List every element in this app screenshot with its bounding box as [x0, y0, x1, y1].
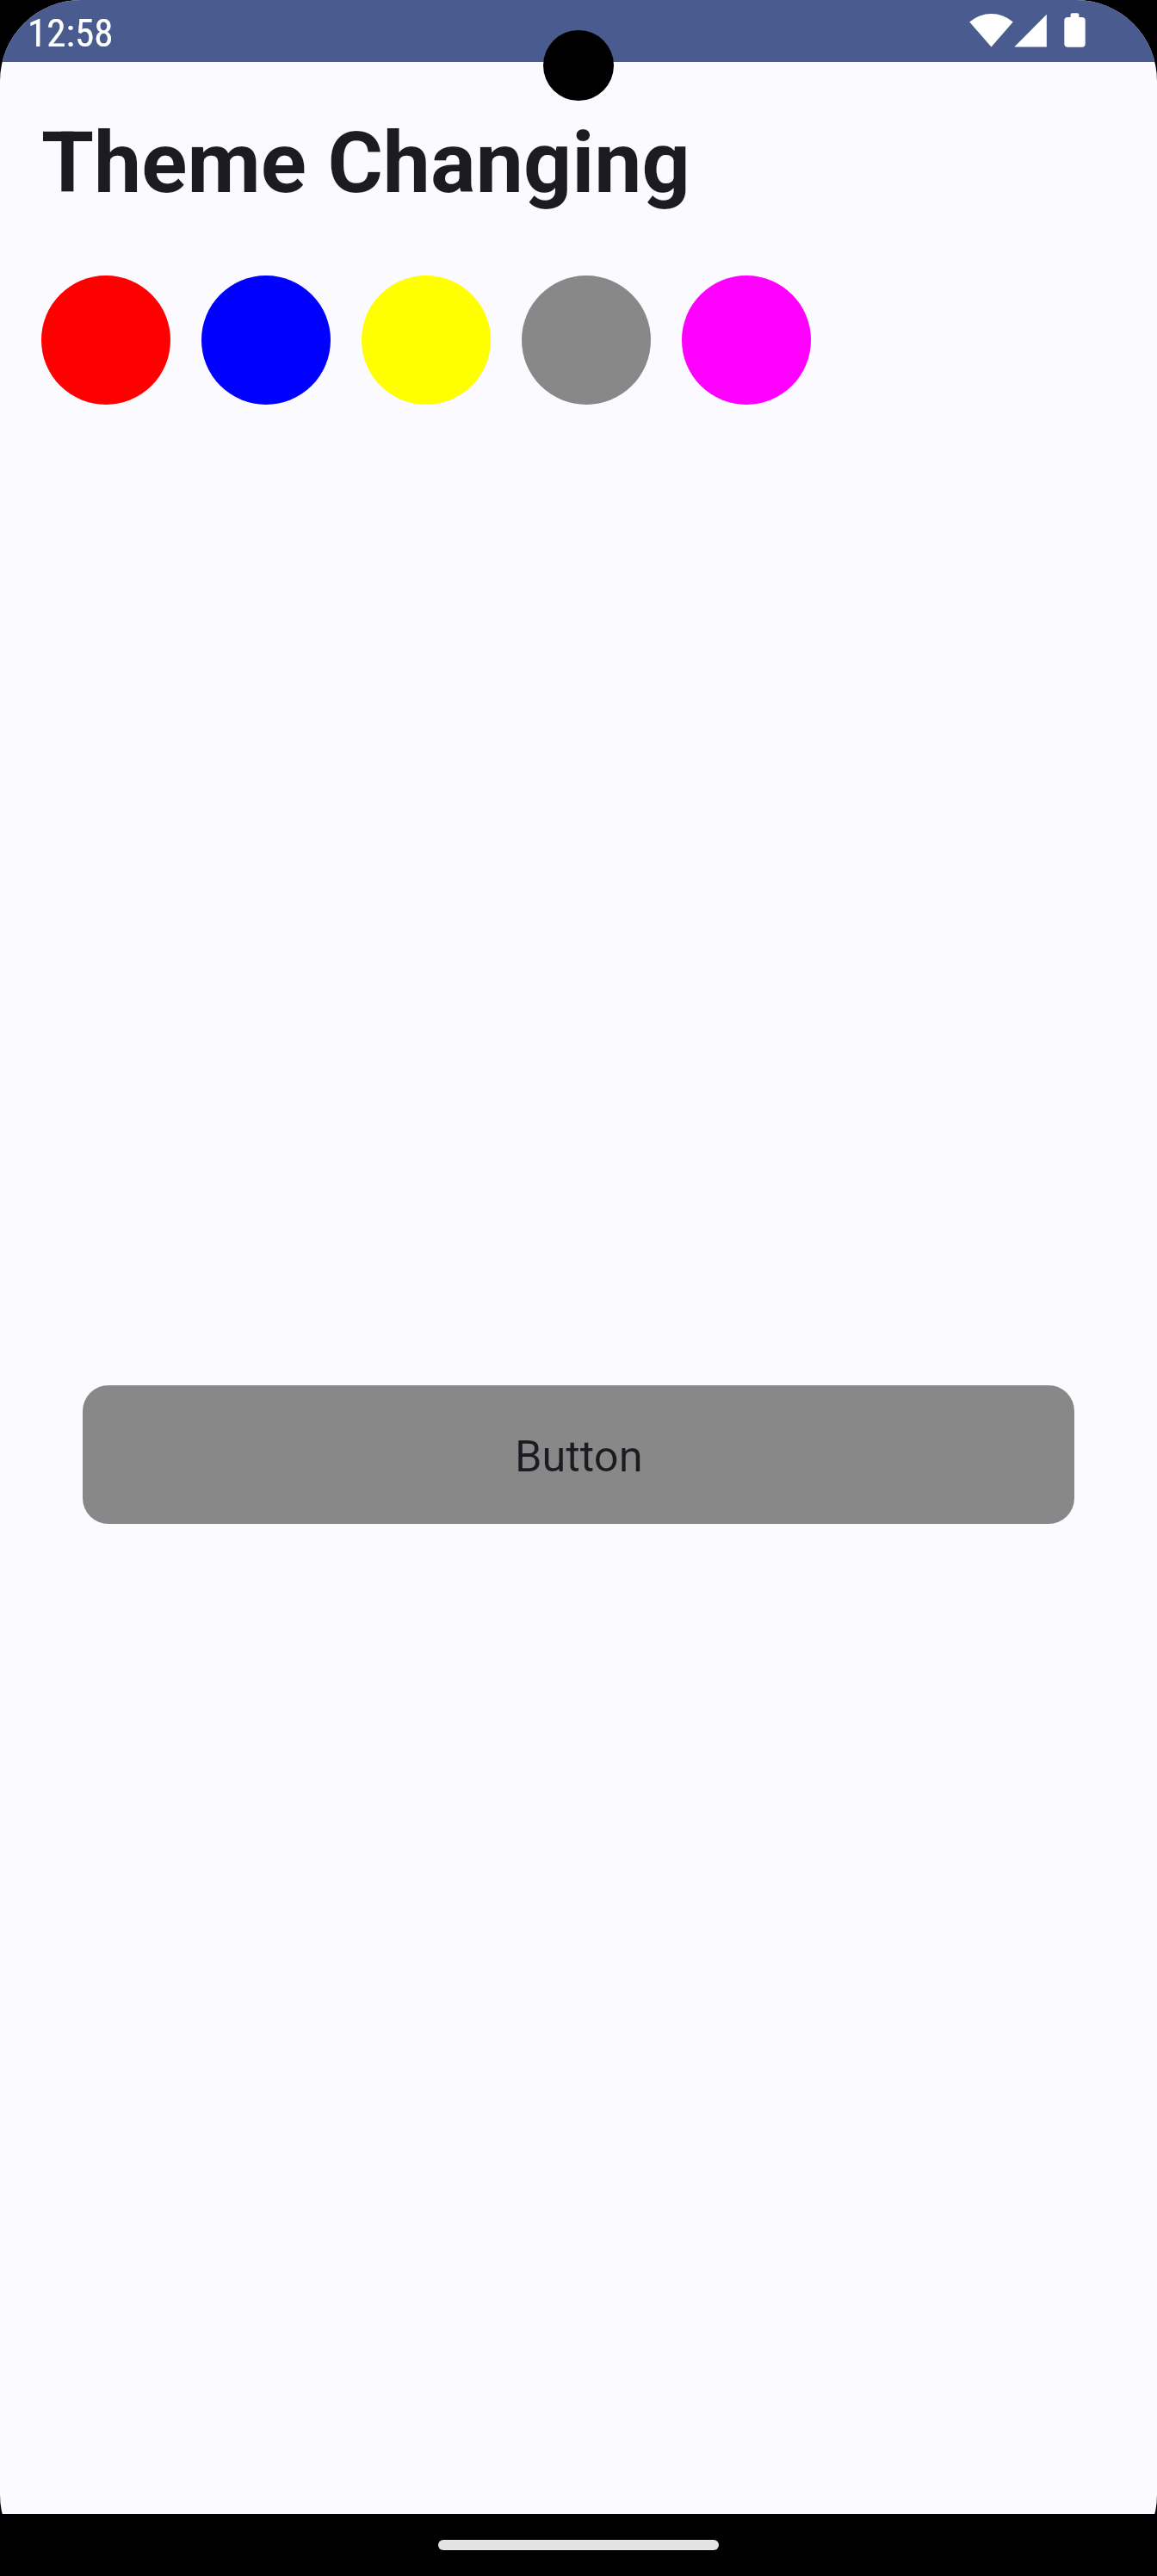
button[interactable]: Magenta theme — [682, 276, 811, 405]
button[interactable]: Red theme — [41, 276, 170, 405]
staticText: Theme Changing — [41, 114, 690, 213]
button[interactable]: Yellow theme — [362, 276, 491, 405]
button[interactable]: Grey theme — [522, 276, 651, 405]
staticText: 12:58 — [28, 10, 114, 56]
button[interactable]: Blue theme — [201, 276, 331, 405]
staticText: Button — [515, 1431, 643, 1482]
button[interactable]: Button — [83, 1385, 1074, 1524]
